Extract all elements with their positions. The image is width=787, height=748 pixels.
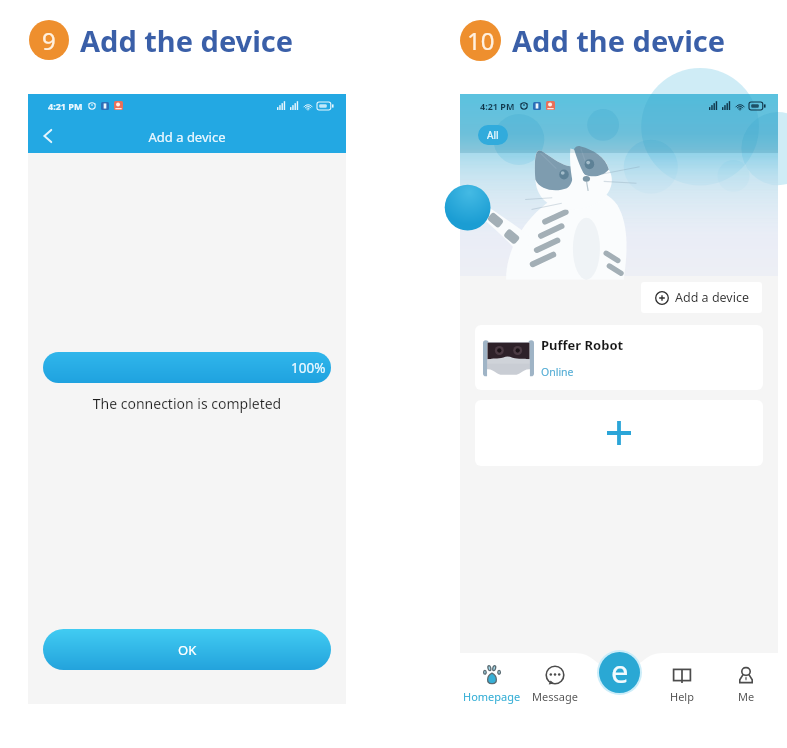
button[interactable]: Back xyxy=(33,121,63,151)
staticText: 9 xyxy=(42,24,56,57)
staticText: 10 xyxy=(467,24,495,57)
staticText: The connection is completed xyxy=(28,394,346,413)
button[interactable]: All xyxy=(478,125,508,145)
staticText: Add a device xyxy=(675,289,749,306)
staticText: Me xyxy=(738,689,755,704)
staticText: 4:21 PM xyxy=(480,100,515,112)
button[interactable]: Home xyxy=(599,652,640,693)
staticText: All xyxy=(487,128,499,142)
staticText: Homepage xyxy=(463,689,521,704)
staticText: 100% xyxy=(291,359,326,377)
button[interactable]: Add device xyxy=(475,400,763,466)
staticText: Puffer Robot xyxy=(541,336,624,354)
staticText: OK xyxy=(178,641,197,659)
button[interactable]: Add a device xyxy=(655,282,749,313)
button[interactable]: Me xyxy=(714,653,778,714)
staticText: Help xyxy=(670,689,694,704)
staticText: e xyxy=(611,652,629,691)
button[interactable]: Homepage xyxy=(460,653,523,714)
button[interactable]: OK xyxy=(43,629,331,670)
staticText: 4:21 PM xyxy=(48,100,83,112)
staticText: Add the device xyxy=(80,21,294,60)
staticText: Add the device xyxy=(512,21,726,60)
staticText: Message xyxy=(532,689,578,704)
button[interactable]: Message xyxy=(523,653,586,714)
staticText: Add a device xyxy=(28,128,346,146)
button[interactable]: Help xyxy=(650,653,714,714)
button[interactable]: Puffer Robot xyxy=(475,325,763,390)
staticText: Online xyxy=(541,365,574,379)
